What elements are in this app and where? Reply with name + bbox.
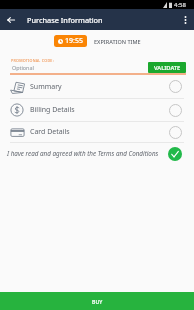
button[interactable]: I have read and agreed with the Terms an… [7, 143, 182, 164]
staticText: Purchase Information [27, 15, 103, 25]
button[interactable]: Back [0, 9, 21, 30]
button[interactable]: Billing Details [9, 99, 182, 121]
staticText: BUY [92, 298, 103, 305]
button[interactable]: More options [176, 11, 194, 29]
staticText: 4:58 [174, 1, 186, 9]
button[interactable]: BUY [0, 292, 194, 310]
staticText: PROMOTIONAL CODE: [11, 58, 54, 63]
staticText: Card Details [30, 127, 70, 137]
staticText: 19:55 [65, 36, 83, 46]
staticText: Billing Details [30, 105, 75, 115]
staticText: VALIDATE [154, 64, 181, 72]
button[interactable]: Summary [9, 75, 182, 98]
staticText: Optional [12, 64, 34, 71]
button[interactable]: Card Details [9, 122, 182, 142]
staticText: Summary [30, 82, 62, 92]
staticText: EXPIRATION TIME [94, 38, 141, 45]
button[interactable]: 19:55 [54, 35, 87, 47]
button[interactable]: VALIDATE [148, 62, 186, 73]
staticText: I have read and agreed with the Terms an… [7, 149, 159, 158]
